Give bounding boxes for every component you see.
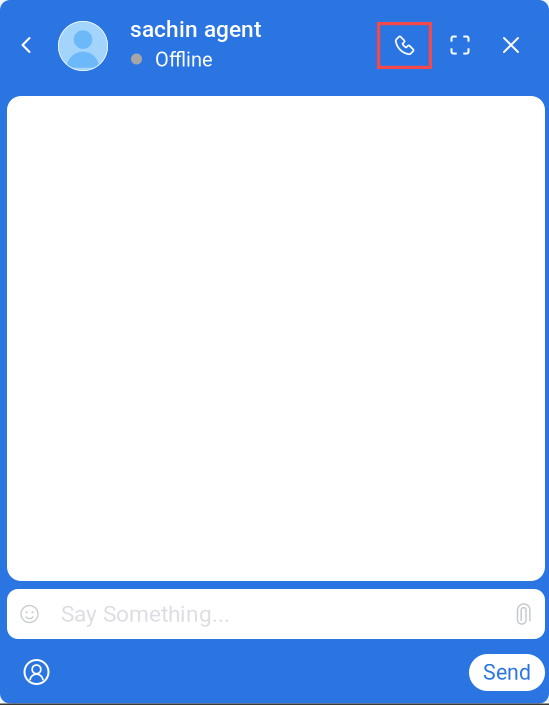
staticText: Say Something... [61, 601, 230, 627]
staticText: Send [483, 660, 531, 685]
button[interactable]: Attach file [507, 596, 540, 632]
button[interactable]: Expand [439, 23, 481, 67]
staticText: sachin agent [130, 16, 262, 43]
staticText: Offline [155, 48, 213, 71]
button[interactable]: Profile [18, 654, 54, 690]
button[interactable]: Close [491, 23, 531, 67]
button[interactable]: Emoji [12, 596, 47, 632]
button[interactable]: Send [469, 654, 545, 691]
button[interactable]: Call [377, 22, 432, 69]
button[interactable]: Back [7, 23, 45, 67]
